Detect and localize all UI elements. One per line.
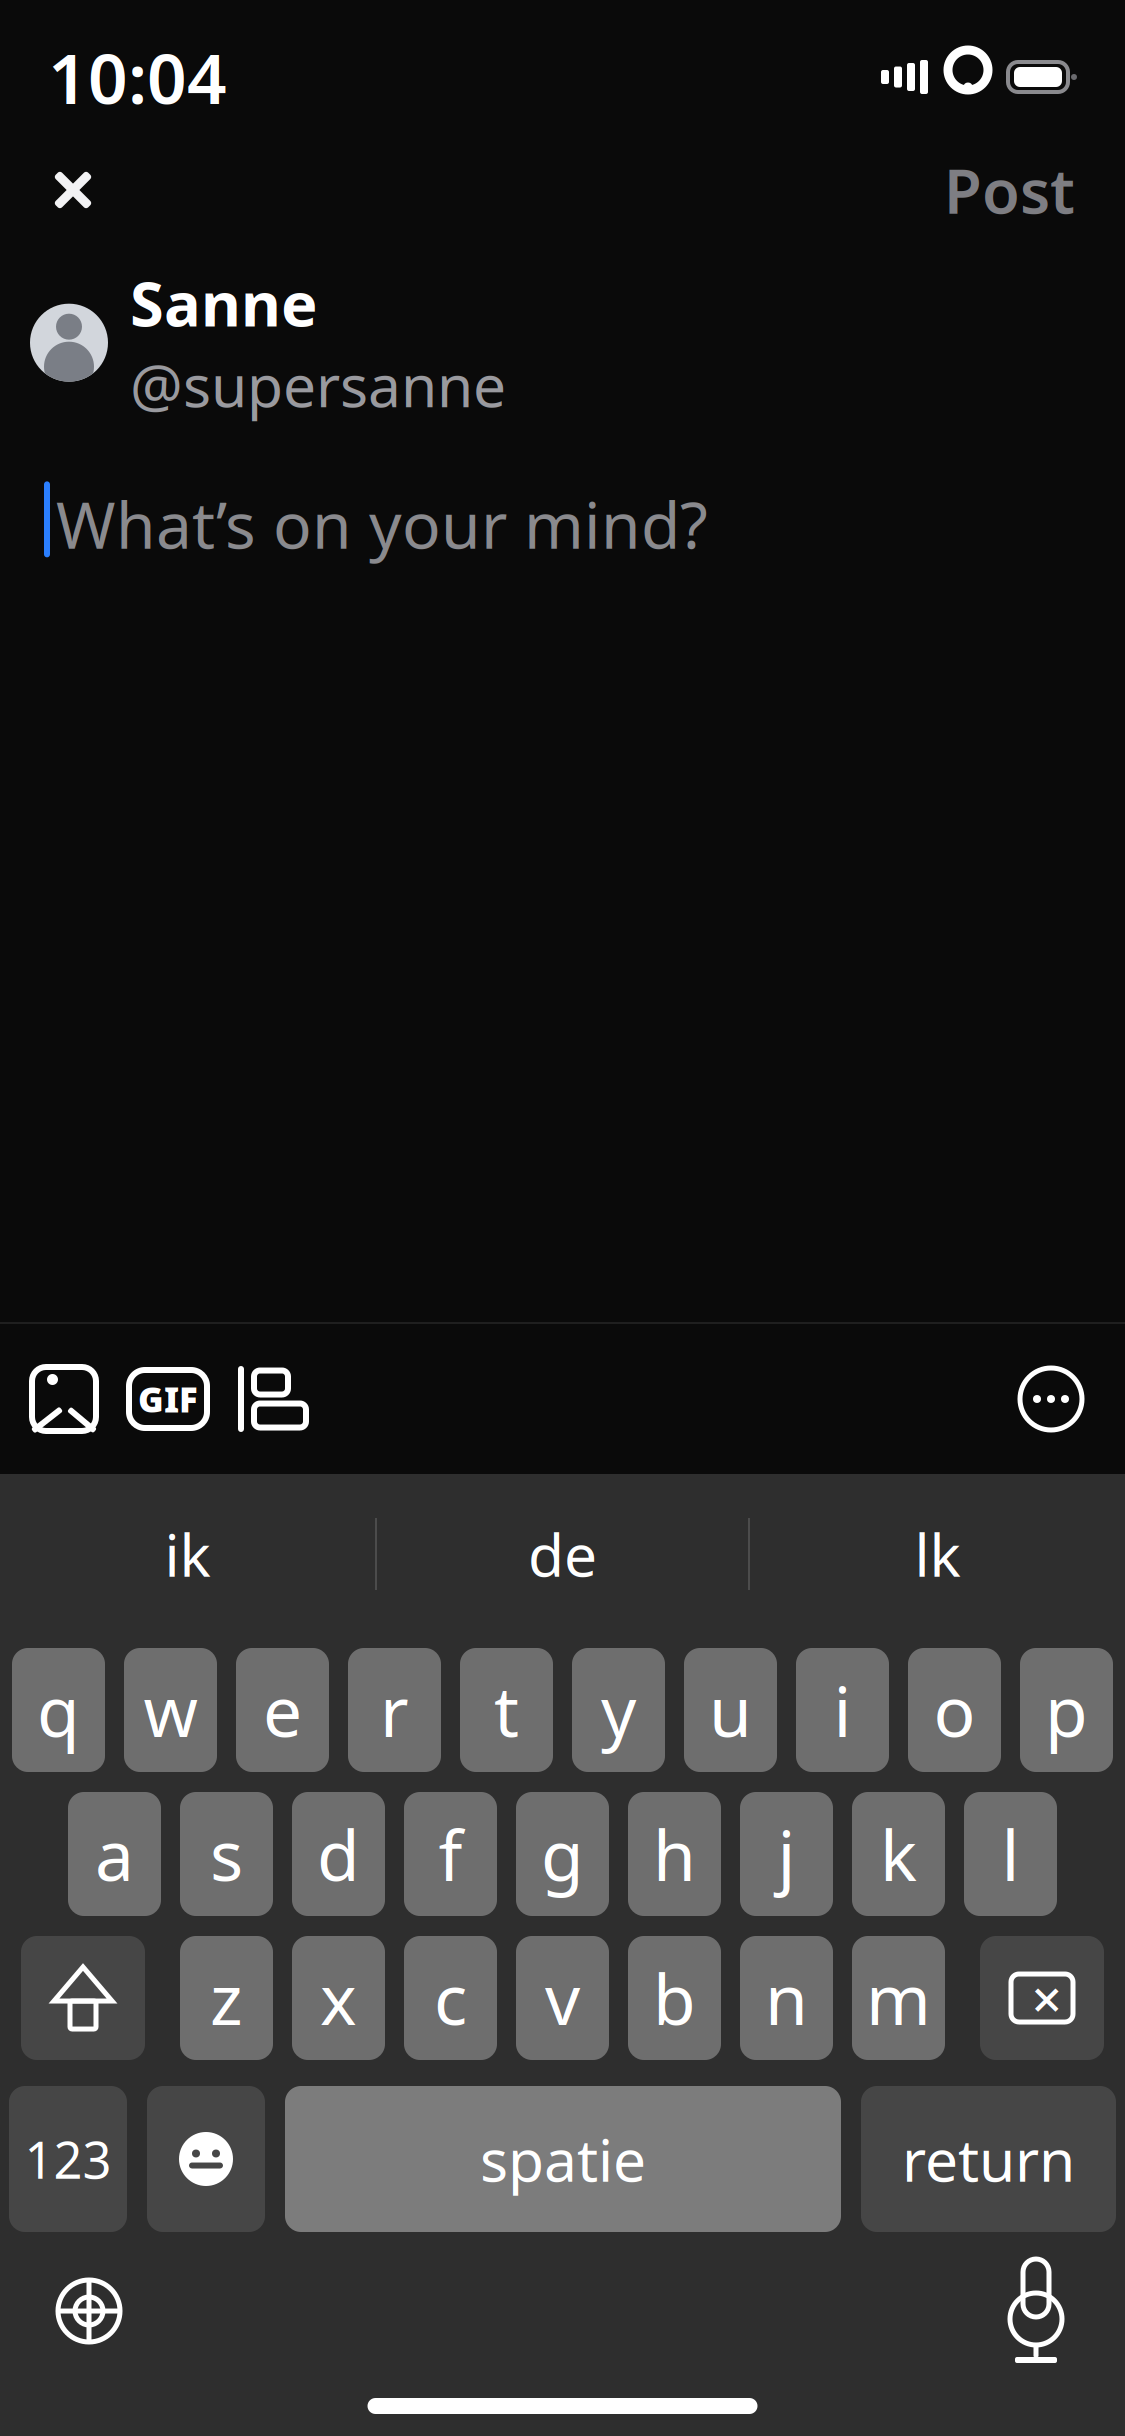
button[interactable]: n	[740, 1936, 833, 2060]
staticText: ×	[1031, 1963, 1062, 2033]
staticText: spatie	[480, 2120, 646, 2198]
button[interactable]: q	[12, 1648, 105, 1772]
staticText: t	[494, 1664, 519, 1756]
button[interactable]: Add photo	[16, 1351, 112, 1447]
button[interactable]: o	[908, 1648, 1001, 1772]
staticText: return	[902, 2120, 1075, 2198]
button[interactable]: u	[684, 1648, 777, 1772]
staticText: k	[880, 1808, 917, 1900]
staticText: Sanne	[130, 262, 318, 343]
staticText: j	[777, 1808, 795, 1900]
staticText: lk	[914, 1515, 960, 1593]
button[interactable]: Emoji	[147, 2086, 265, 2232]
staticText: f	[438, 1808, 462, 1900]
button[interactable]: More options	[1003, 1351, 1099, 1447]
button[interactable]: i	[796, 1648, 889, 1772]
button[interactable]: c	[404, 1936, 497, 2060]
staticText: n	[765, 1952, 808, 2044]
staticText: q	[37, 1664, 80, 1756]
staticText: c	[434, 1952, 467, 2044]
button[interactable]: m	[852, 1936, 945, 2060]
staticText: 10:04	[48, 31, 227, 123]
button[interactable]: y	[572, 1648, 665, 1772]
staticText: a	[95, 1808, 134, 1900]
staticText: h	[653, 1808, 696, 1900]
button[interactable]: Change keyboard language	[34, 2256, 144, 2366]
button[interactable]: h	[628, 1792, 721, 1916]
staticText: p	[1045, 1664, 1088, 1756]
staticText: y	[601, 1664, 636, 1756]
button[interactable]: de	[377, 1489, 748, 1619]
button[interactable]: k	[852, 1792, 945, 1916]
staticText: m	[866, 1952, 931, 2044]
button[interactable]: z	[180, 1936, 273, 2060]
button[interactable]: x	[292, 1936, 385, 2060]
staticText: de	[528, 1515, 597, 1593]
button[interactable]: Add poll	[224, 1351, 320, 1447]
staticText: u	[709, 1664, 752, 1756]
staticText: v	[545, 1952, 580, 2044]
button[interactable]: Post	[930, 145, 1089, 235]
button[interactable]: Dictate	[981, 2256, 1091, 2366]
staticText: l	[1001, 1808, 1019, 1900]
button[interactable]: b	[628, 1936, 721, 2060]
button[interactable]: t	[460, 1648, 553, 1772]
staticText: x	[320, 1952, 357, 2044]
staticText: @supersanne	[130, 345, 506, 423]
staticText: r	[380, 1664, 409, 1756]
button[interactable]: a	[68, 1792, 161, 1916]
staticText: d	[317, 1808, 360, 1900]
button[interactable]: w	[124, 1648, 217, 1772]
button[interactable]: r	[348, 1648, 441, 1772]
button[interactable]: Delete	[980, 1936, 1104, 2060]
staticText: z	[210, 1952, 243, 2044]
staticText: o	[933, 1664, 975, 1756]
staticText: e	[263, 1664, 302, 1756]
button[interactable]: g	[516, 1792, 609, 1916]
button[interactable]: ik	[0, 1489, 375, 1619]
staticText: GIF	[138, 1376, 198, 1422]
staticText: 123	[24, 2125, 111, 2193]
button[interactable]: j	[740, 1792, 833, 1916]
button[interactable]: spatie	[285, 2086, 841, 2232]
button[interactable]: f	[404, 1792, 497, 1916]
button[interactable]: Add GIF	[120, 1351, 216, 1447]
button[interactable]: l	[964, 1792, 1057, 1916]
button[interactable]: p	[1020, 1648, 1113, 1772]
button[interactable]: Close	[28, 145, 118, 235]
button[interactable]: e	[236, 1648, 329, 1772]
button[interactable]: s	[180, 1792, 273, 1916]
button[interactable]: d	[292, 1792, 385, 1916]
staticText: Post	[944, 149, 1075, 231]
staticText: What’s on your mind?	[56, 481, 708, 566]
staticText: b	[653, 1952, 696, 2044]
staticText: i	[833, 1664, 851, 1756]
staticText: s	[210, 1808, 243, 1900]
staticText: g	[541, 1808, 584, 1900]
staticText: w	[143, 1664, 197, 1756]
button[interactable]: v	[516, 1936, 609, 2060]
button[interactable]: lk	[750, 1489, 1125, 1619]
button[interactable]: 123	[9, 2086, 127, 2232]
button[interactable]: return	[861, 2086, 1116, 2232]
button[interactable]: Shift	[21, 1936, 145, 2060]
staticText: ik	[164, 1515, 210, 1593]
